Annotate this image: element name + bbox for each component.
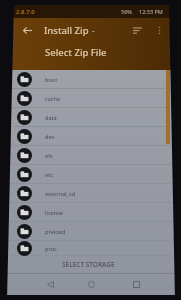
- staticText: Install Zip: [44, 24, 89, 37]
- button[interactable]: cache: [7, 89, 175, 108]
- staticText: data: [45, 114, 57, 122]
- button[interactable]: efs: [7, 146, 175, 165]
- button[interactable]: license: [7, 203, 175, 222]
- staticText: external_sd: [45, 190, 76, 198]
- button[interactable]: boot: [7, 70, 175, 89]
- staticText: 2.8.7.0: [16, 8, 35, 16]
- staticText: Select Zip File: [45, 46, 107, 59]
- button[interactable]: dev: [7, 127, 175, 146]
- button[interactable]: etc: [7, 165, 175, 184]
- staticText: boot: [45, 76, 58, 84]
- staticText: SELECT STORAGE: [62, 260, 115, 269]
- button[interactable]: proc: [7, 241, 175, 256]
- staticText: cache: [45, 95, 61, 103]
- button[interactable]: Recents: [125, 273, 147, 295]
- staticText: license: [45, 209, 64, 217]
- staticText: preload: [45, 228, 66, 236]
- button[interactable]: More options: [151, 22, 167, 38]
- button[interactable]: data: [7, 108, 175, 127]
- button[interactable]: external_sd: [7, 184, 175, 203]
- staticText: proc: [45, 245, 57, 253]
- button[interactable]: SELECT STORAGE: [7, 256, 175, 273]
- staticText: efs: [45, 152, 53, 160]
- button[interactable]: Home: [80, 273, 102, 295]
- button[interactable]: Back: [39, 273, 61, 295]
- staticText: -: [92, 25, 95, 36]
- staticText: 56%: [121, 8, 132, 15]
- button[interactable]: Back: [17, 20, 37, 40]
- button[interactable]: preload: [7, 222, 175, 241]
- staticText: etc: [45, 171, 53, 179]
- button[interactable]: Sort: [128, 21, 146, 39]
- staticText: 12:33 PM: [139, 8, 163, 15]
- staticText: dev: [45, 133, 55, 141]
